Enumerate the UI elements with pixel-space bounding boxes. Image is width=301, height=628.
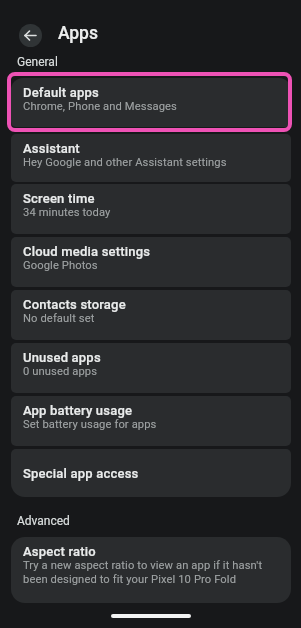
button[interactable]: Unused apps <box>11 343 291 393</box>
button[interactable]: App battery usage <box>11 396 291 446</box>
button[interactable]: Assistant <box>11 134 291 182</box>
staticText: Cloud media settings <box>23 244 151 259</box>
staticText: 0 unused apps <box>23 365 98 378</box>
staticText: General <box>17 55 58 69</box>
staticText: Screen time <box>23 191 95 206</box>
button[interactable]: Contacts storage <box>11 290 291 340</box>
button[interactable]: Default apps <box>11 78 291 127</box>
staticText: Set battery usage for apps <box>23 418 157 431</box>
button[interactable]: Cloud media settings <box>11 237 291 287</box>
staticText: App battery usage <box>23 403 133 418</box>
button[interactable]: Aspect ratio <box>11 537 291 603</box>
staticText: Hey Google and other Assistant settings <box>23 156 227 169</box>
staticText: Try a new aspect ratio to view an app if… <box>23 559 263 586</box>
staticText: No default set <box>23 312 95 325</box>
button[interactable] <box>19 24 42 47</box>
staticText: Advanced <box>17 514 70 528</box>
staticText: Contacts storage <box>23 297 126 312</box>
staticText: Special app access <box>23 466 139 481</box>
staticText: Unused apps <box>23 350 101 365</box>
button[interactable]: Special app access <box>11 449 291 497</box>
staticText: Chrome, Phone and Messages <box>23 100 177 113</box>
staticText: Default apps <box>23 85 100 100</box>
button[interactable]: Screen time <box>11 184 291 234</box>
staticText: Aspect ratio <box>23 544 96 559</box>
staticText: Google Photos <box>23 259 98 272</box>
staticText: Apps <box>58 23 98 44</box>
staticText: 34 minutes today <box>23 206 111 219</box>
staticText: Assistant <box>23 141 80 156</box>
